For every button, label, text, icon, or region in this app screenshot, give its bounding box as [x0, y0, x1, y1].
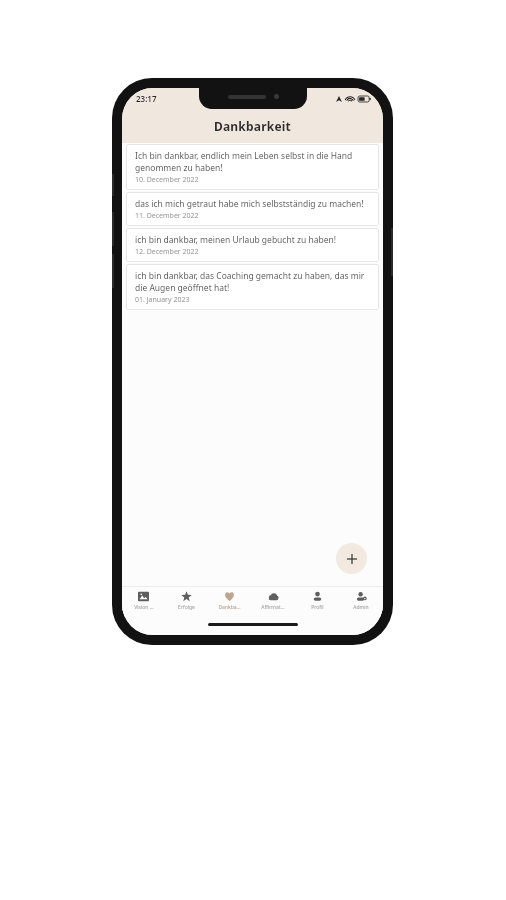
- other: Vision: [138, 591, 149, 602]
- staticText: 12. December 2022: [135, 247, 199, 257]
- staticText: Dankbarkeit: [214, 118, 291, 134]
- button[interactable]: Affirmationen: [251, 587, 295, 617]
- button[interactable]: Ich bin dankbar, endlich mein Leben selb…: [126, 144, 379, 190]
- staticText: 23:17: [136, 93, 157, 104]
- other: Admin: [356, 591, 367, 602]
- button[interactable]: das ich mich getraut habe mich selbststä…: [126, 192, 379, 226]
- staticText: Profil: [311, 604, 324, 611]
- staticText: Admin: [353, 604, 369, 611]
- staticText: ich bin dankbar, das Coaching gemacht zu…: [135, 270, 370, 294]
- button[interactable]: Neuen Eintrag hinzufügen: [336, 543, 367, 574]
- other: Profil: [312, 591, 323, 602]
- staticText: Vision ...: [134, 604, 154, 611]
- staticText: das ich mich getraut habe mich selbststä…: [135, 198, 364, 210]
- staticText: Dankba...: [218, 604, 241, 611]
- button[interactable]: Dankbarkeit: [208, 587, 251, 617]
- staticText: 11. December 2022: [135, 211, 199, 221]
- button[interactable]: ich bin dankbar, meinen Urlaub gebucht z…: [126, 228, 379, 262]
- staticText: ich bin dankbar, meinen Urlaub gebucht z…: [135, 234, 337, 246]
- staticText: 01. January 2023: [135, 295, 190, 305]
- staticText: Ich bin dankbar, endlich mein Leben selb…: [135, 150, 370, 174]
- button[interactable]: Erfolge: [165, 587, 208, 617]
- staticText: 10. December 2022: [135, 175, 199, 185]
- staticText: Erfolge: [178, 604, 195, 611]
- other: Erfolge: [181, 591, 192, 602]
- button[interactable]: ich bin dankbar, das Coaching gemacht zu…: [126, 264, 379, 310]
- other: Dankbarkeit: [224, 591, 235, 602]
- button[interactable]: Vision: [122, 587, 165, 617]
- button[interactable]: Profil: [295, 587, 339, 617]
- other: Affirmationen: [268, 591, 279, 602]
- button[interactable]: Admin: [339, 587, 383, 617]
- staticText: Affirmat...: [261, 604, 285, 611]
